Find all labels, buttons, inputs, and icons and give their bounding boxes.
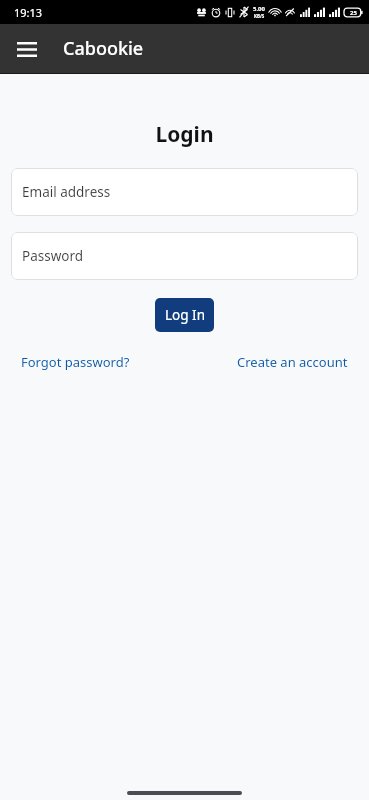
button[interactable]: Password bbox=[11, 232, 358, 280]
staticText: Cabookie bbox=[63, 36, 144, 61]
button[interactable]: Forgot password? bbox=[21, 353, 130, 371]
button[interactable]: Open navigation menu bbox=[8, 30, 46, 68]
button[interactable]: Email address bbox=[11, 168, 358, 216]
staticText: KB/S bbox=[254, 13, 265, 19]
staticText: 25 bbox=[350, 9, 357, 17]
staticText: Email address bbox=[22, 183, 111, 201]
staticText: Login bbox=[0, 120, 369, 149]
staticText: 5.00 bbox=[253, 5, 265, 13]
button[interactable]: Create an account bbox=[237, 353, 348, 371]
button[interactable]: Log In bbox=[155, 298, 214, 332]
staticText: Create an account bbox=[237, 353, 348, 371]
staticText: Forgot password? bbox=[21, 353, 130, 371]
staticText: Log In bbox=[165, 306, 205, 324]
staticText: Password bbox=[22, 247, 84, 265]
staticText: 19:13 bbox=[14, 5, 43, 20]
